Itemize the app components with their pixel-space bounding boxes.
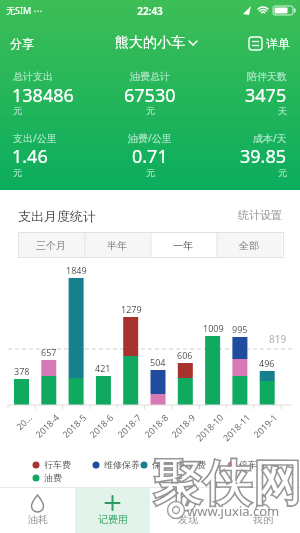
staticText: 元 bbox=[13, 105, 22, 116]
staticText: 发现 bbox=[178, 513, 198, 526]
staticText: 陪伴天数 bbox=[247, 70, 287, 83]
staticText: 元 bbox=[146, 167, 155, 178]
staticText: 我的 bbox=[253, 513, 273, 526]
button[interactable]: 一年 bbox=[150, 232, 216, 258]
staticText: 聚侠网 bbox=[152, 453, 300, 515]
staticText: 138486 bbox=[12, 83, 74, 108]
staticText: 统计设置 bbox=[238, 208, 282, 222]
staticText: 2018-5 bbox=[59, 411, 88, 440]
button[interactable]: 全部 bbox=[216, 232, 282, 258]
staticText: 维修保养 bbox=[104, 459, 140, 470]
staticText: 2018-4 bbox=[32, 411, 61, 440]
staticText: 1279 bbox=[121, 303, 142, 315]
staticText: 成本/天 bbox=[253, 131, 287, 145]
staticText: 2018-6 bbox=[86, 411, 115, 440]
staticText: 三个月 bbox=[36, 239, 66, 252]
staticText: 378 bbox=[14, 365, 30, 377]
staticText: www.juxia.com bbox=[187, 502, 280, 520]
staticText: 油耗 bbox=[28, 513, 48, 526]
staticText: 657 bbox=[41, 346, 57, 358]
staticText: 天 bbox=[278, 105, 287, 116]
staticText: 半年 bbox=[107, 239, 127, 252]
staticText: 支出/公里 bbox=[13, 131, 57, 145]
button[interactable]: 详单 bbox=[266, 36, 290, 51]
staticText: 聚侠网 bbox=[152, 453, 300, 515]
staticText: 606 bbox=[177, 349, 193, 361]
staticText: 2018-10 bbox=[193, 411, 225, 443]
staticText: 记费用 bbox=[98, 513, 128, 526]
staticText: 2018-7 bbox=[114, 411, 143, 440]
staticText: 3475 bbox=[245, 83, 287, 108]
staticText: www.juxia.com bbox=[188, 503, 288, 521]
staticText: 1849 bbox=[66, 264, 87, 276]
button[interactable]: 分享 bbox=[10, 36, 34, 51]
button[interactable]: 我的 bbox=[225, 487, 300, 533]
staticText: 421 bbox=[95, 362, 111, 374]
staticText: 1009 bbox=[203, 322, 224, 334]
staticText: 39.85 bbox=[240, 144, 287, 169]
staticText: 停车费 bbox=[239, 459, 266, 470]
staticText: 67530 bbox=[124, 83, 176, 108]
staticText: 油费 bbox=[44, 472, 62, 483]
staticText: 0.71 bbox=[132, 144, 168, 169]
staticText: 504 bbox=[150, 356, 166, 368]
staticText: 819 bbox=[269, 332, 287, 346]
staticText: 2018-8 bbox=[141, 411, 170, 440]
staticText: 22:43 bbox=[0, 4, 300, 18]
staticText: 元 bbox=[13, 167, 22, 178]
staticText: 无SIM ⋯ bbox=[6, 4, 43, 16]
staticText: 995 bbox=[232, 323, 248, 335]
staticText: 2019-1 bbox=[250, 411, 279, 440]
staticText: 元 bbox=[146, 105, 155, 116]
button[interactable]: 统计设置 bbox=[0, 208, 282, 222]
staticText: 20… bbox=[13, 411, 34, 432]
staticText: 1.46 bbox=[12, 144, 48, 169]
staticText: 油费/公里 bbox=[128, 131, 172, 145]
button[interactable]: 三个月 bbox=[18, 232, 84, 258]
staticText: 元 bbox=[278, 167, 287, 178]
staticText: 行车费 bbox=[44, 459, 71, 470]
staticText: 一年 bbox=[173, 239, 193, 252]
button[interactable] bbox=[75, 488, 150, 533]
staticText: 油费总计 bbox=[130, 70, 170, 83]
button[interactable]: 油耗 bbox=[0, 487, 75, 533]
staticText: 496 bbox=[259, 357, 275, 369]
button[interactable]: 熊大的小车 bbox=[0, 34, 300, 52]
staticText: 2018-9 bbox=[168, 411, 197, 440]
staticText: 支出月度统计 bbox=[18, 208, 96, 224]
button[interactable]: 半年 bbox=[84, 232, 150, 258]
staticText: 保险和年检费 bbox=[152, 459, 206, 470]
staticText: 全部 bbox=[239, 239, 259, 252]
button[interactable]: 发现 bbox=[150, 487, 225, 533]
staticText: 总计支出 bbox=[13, 70, 53, 83]
staticText: 2018-11 bbox=[220, 411, 252, 443]
